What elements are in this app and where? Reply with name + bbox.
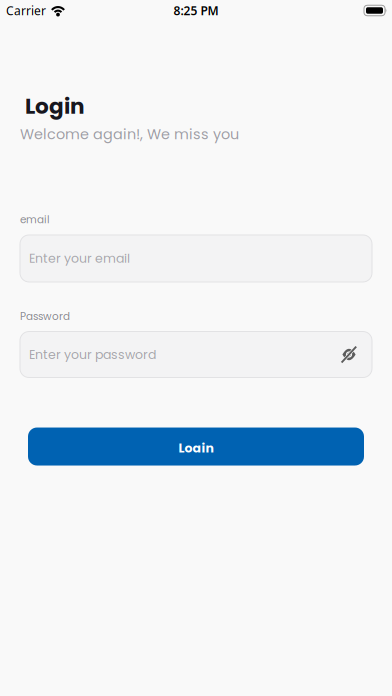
staticText: Enter your password [29, 346, 156, 363]
staticText: Enter your email [29, 250, 130, 267]
button[interactable]: Loain [28, 427, 364, 465]
button[interactable]: Show password [340, 345, 358, 363]
button[interactable]: Enter your email [20, 235, 372, 282]
staticText: Carrier [6, 2, 46, 18]
staticText: Welcome again!, We miss you [20, 124, 239, 144]
button[interactable]: Enter your password [20, 331, 372, 377]
staticText: email [20, 212, 50, 227]
staticText: Password [20, 309, 70, 324]
staticText: Login [25, 91, 85, 121]
staticText: Loain [178, 439, 213, 457]
staticText: 8:25 PM [173, 2, 218, 18]
